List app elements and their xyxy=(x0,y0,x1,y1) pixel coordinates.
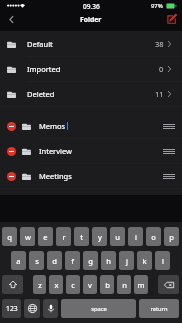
staticText: return xyxy=(150,305,168,313)
button[interactable]: Default xyxy=(0,32,182,56)
button[interactable]: o xyxy=(146,227,161,246)
button[interactable]: Imported xyxy=(0,57,182,81)
staticText: Meetings xyxy=(39,171,72,181)
button[interactable]: i xyxy=(128,227,143,246)
staticText: Imported xyxy=(27,64,61,74)
button[interactable]: w xyxy=(20,227,35,246)
button[interactable]: space xyxy=(61,299,136,318)
staticText: 09.36 xyxy=(83,2,100,11)
staticText: p xyxy=(169,232,174,242)
button[interactable]: z xyxy=(33,275,46,294)
button[interactable]: g xyxy=(83,251,98,270)
staticText: c xyxy=(71,280,75,290)
staticText: Interview xyxy=(39,146,72,156)
button[interactable]: Delete xyxy=(7,172,16,181)
button[interactable]: Shift xyxy=(2,275,23,294)
button[interactable]: New folder xyxy=(160,12,182,26)
staticText: 38 xyxy=(155,39,164,49)
button[interactable]: h xyxy=(101,251,116,270)
button[interactable]: t xyxy=(74,227,89,246)
staticText: o xyxy=(151,232,156,242)
button[interactable]: c xyxy=(66,275,80,294)
staticText: y xyxy=(98,232,102,242)
other: Reorder xyxy=(163,124,175,129)
staticText: j xyxy=(126,256,128,266)
other: Reorder xyxy=(163,174,175,179)
button[interactable]: Delete xyxy=(0,164,182,188)
button[interactable]: Numbers xyxy=(2,299,21,318)
button[interactable]: d xyxy=(47,251,62,270)
button[interactable]: f xyxy=(65,251,80,270)
staticText: u xyxy=(115,232,120,242)
staticText: v xyxy=(88,280,92,290)
staticText: 123 xyxy=(6,304,18,313)
button[interactable]: n xyxy=(117,275,131,294)
staticText: r xyxy=(62,232,66,242)
staticText: space xyxy=(91,305,107,313)
staticText: t xyxy=(80,232,83,242)
button[interactable]: q xyxy=(2,227,17,246)
button[interactable]: a xyxy=(11,251,26,270)
button[interactable]: v xyxy=(83,275,97,294)
staticText: d xyxy=(52,256,57,266)
staticText: Memos xyxy=(39,121,66,131)
staticText: 11 xyxy=(155,89,164,99)
staticText: x xyxy=(54,280,59,290)
button[interactable]: Delete xyxy=(7,147,16,156)
button[interactable]: p xyxy=(164,227,179,246)
button[interactable]: m xyxy=(134,275,148,294)
staticText: s xyxy=(35,256,39,266)
button[interactable]: Delete xyxy=(0,114,182,138)
other: Reorder xyxy=(163,149,175,154)
button[interactable]: b xyxy=(100,275,114,294)
button[interactable]: y xyxy=(92,227,107,246)
staticText: z xyxy=(38,280,42,290)
staticText: n xyxy=(122,280,127,290)
staticText: l xyxy=(162,256,164,266)
button[interactable]: u xyxy=(110,227,125,246)
staticText: Deleted xyxy=(27,89,55,99)
staticText: Folder xyxy=(80,15,102,24)
button[interactable]: x xyxy=(49,275,63,294)
staticText: w xyxy=(25,232,31,242)
staticText: b xyxy=(105,280,110,290)
button[interactable]: r xyxy=(56,227,71,246)
button[interactable]: Deleted xyxy=(0,82,182,106)
staticText: a xyxy=(16,256,21,266)
staticText: 97% xyxy=(151,2,163,10)
button[interactable]: s xyxy=(29,251,44,270)
button[interactable]: Dictate xyxy=(43,299,58,318)
button[interactable]: k xyxy=(137,251,152,270)
button[interactable]: Emoji xyxy=(24,299,40,318)
button[interactable]: Delete xyxy=(7,122,16,131)
staticText: g xyxy=(88,256,93,266)
staticText: 0 xyxy=(159,64,164,74)
button[interactable]: e xyxy=(38,227,53,246)
staticText: m xyxy=(137,280,145,290)
staticText: q xyxy=(7,232,12,242)
staticText: i xyxy=(135,232,137,242)
button[interactable]: Backspace xyxy=(158,275,179,294)
staticText: e xyxy=(43,232,48,242)
staticText: Default xyxy=(27,39,53,49)
button[interactable]: return xyxy=(139,299,179,318)
button[interactable]: Delete xyxy=(0,139,182,163)
button[interactable]: l xyxy=(155,251,170,270)
staticText: h xyxy=(106,256,111,266)
staticText: k xyxy=(142,256,147,266)
staticText: f xyxy=(71,256,74,266)
button[interactable]: Back xyxy=(0,12,22,26)
button[interactable]: j xyxy=(119,251,134,270)
